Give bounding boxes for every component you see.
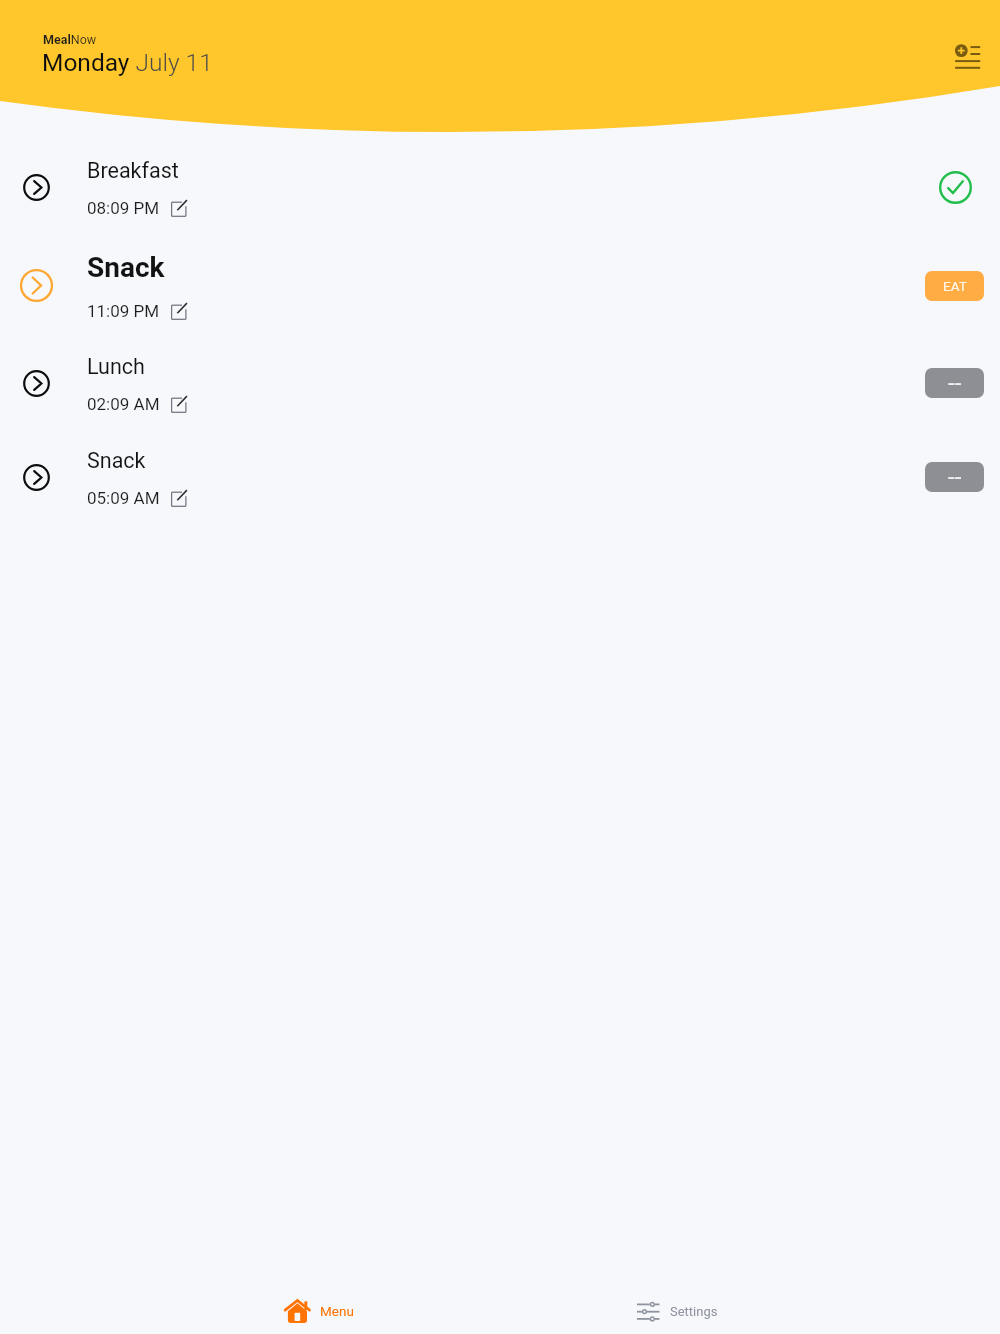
button[interactable]: Open Snack details (17, 266, 56, 305)
staticText: Snack (87, 448, 146, 473)
staticText: -- (948, 369, 962, 397)
staticText: 08:09 PM (87, 198, 160, 218)
staticText: Menu (320, 1303, 354, 1319)
button[interactable]: -- (925, 462, 984, 492)
staticText: EAT (943, 278, 967, 294)
button[interactable]: Edit time (171, 198, 191, 218)
staticText: Monday July 11 (42, 48, 213, 77)
button[interactable]: Settings (631, 1292, 718, 1330)
button[interactable]: Open Breakfast details (0, 140, 1000, 234)
staticText: Breakfast (87, 158, 179, 183)
button[interactable]: Open Lunch details (20, 367, 53, 400)
staticText: Lunch (87, 354, 145, 379)
staticText: Snack (87, 251, 165, 284)
staticText: MealNow (43, 32, 97, 47)
staticText: Settings (670, 1304, 718, 1319)
button[interactable]: Eaten (939, 171, 972, 204)
button[interactable]: -- (925, 368, 984, 398)
button[interactable]: Open Snack details (20, 461, 53, 494)
staticText: 02:09 AM (87, 394, 160, 414)
staticText: 05:09 AM (87, 488, 160, 508)
button[interactable]: Open Breakfast details (20, 171, 53, 204)
button[interactable]: Open Snack details (0, 430, 1000, 524)
button[interactable]: Add meal (938, 26, 990, 78)
button[interactable]: Open Snack details (0, 239, 1000, 333)
button[interactable]: EAT (925, 271, 984, 301)
button[interactable]: Edit time (171, 394, 191, 414)
staticText: -- (948, 463, 962, 491)
staticText: 11:09 PM (87, 301, 160, 321)
button[interactable]: Menu (278, 1292, 354, 1330)
button[interactable]: Edit time (171, 488, 191, 508)
button[interactable]: Edit time (171, 301, 191, 321)
button[interactable]: Open Lunch details (0, 336, 1000, 430)
